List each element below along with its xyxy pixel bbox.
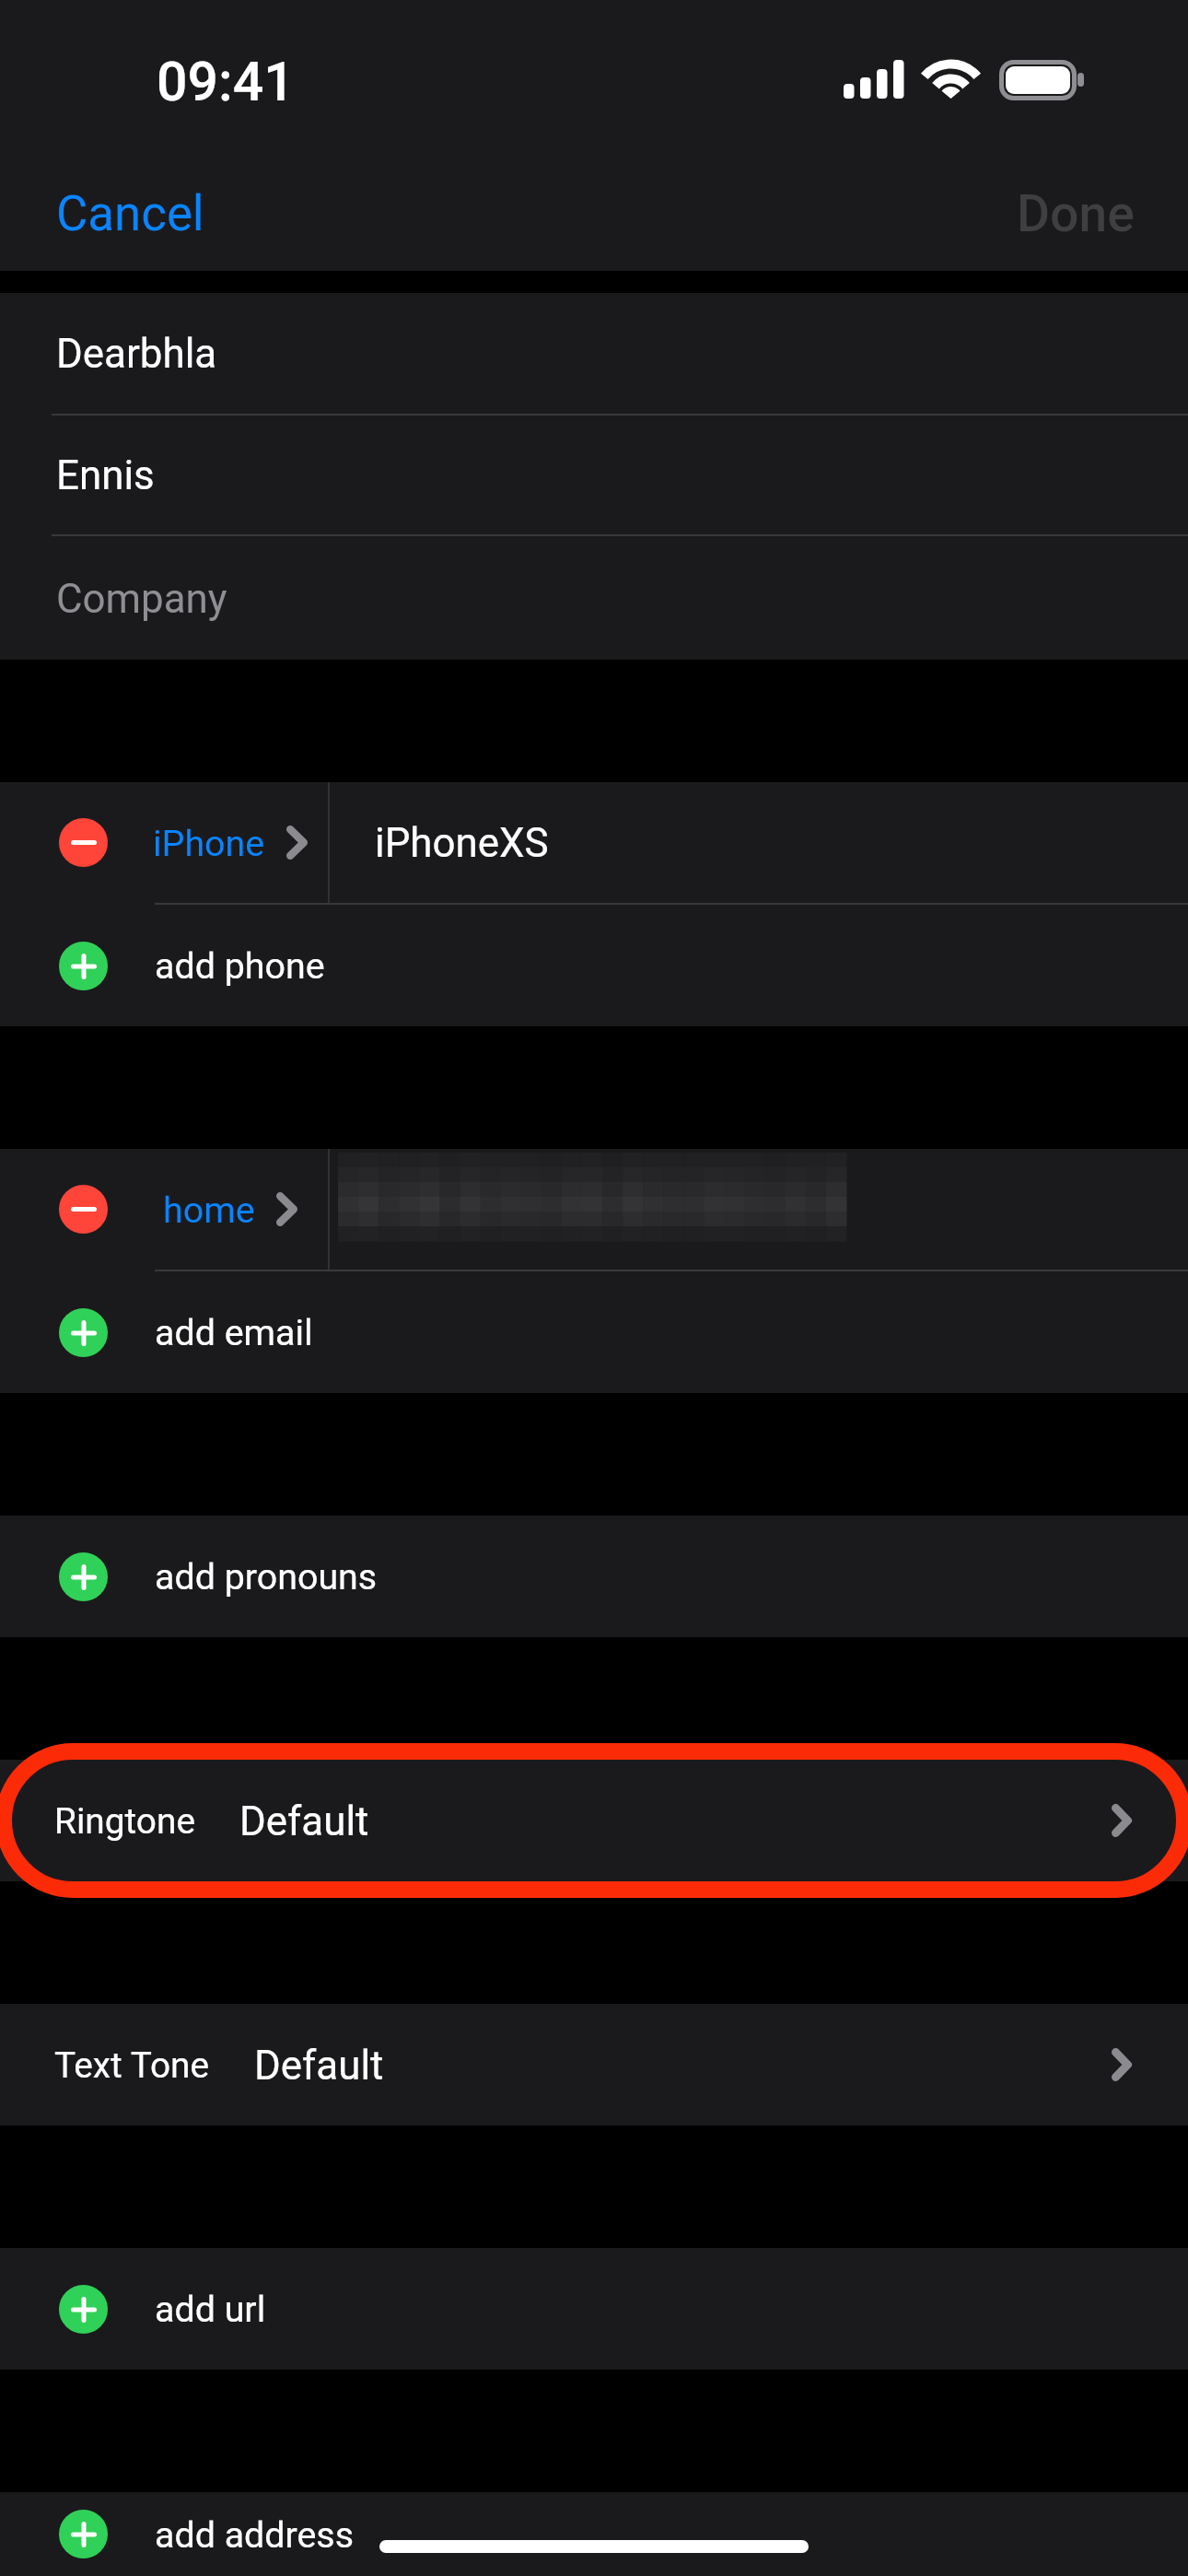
- button[interactable]: Cancel: [0, 158, 241, 270]
- staticText: Dearbhla: [56, 330, 217, 377]
- staticText: add email: [155, 1311, 313, 1353]
- button[interactable]: Add: [59, 2285, 108, 2334]
- button[interactable]: Ringtone: [0, 1760, 1188, 1881]
- staticText: add url: [155, 2288, 266, 2330]
- staticText: Company: [56, 575, 227, 622]
- button[interactable]: Done: [980, 157, 1188, 271]
- staticText: home: [163, 1188, 255, 1231]
- button[interactable]: Remove: [59, 1185, 108, 1234]
- staticText: Default: [254, 2042, 384, 2089]
- button[interactable]: Add: [0, 2248, 1188, 2370]
- staticText: Done: [1017, 184, 1135, 243]
- staticText: Ringtone: [54, 1800, 195, 1842]
- staticText: add address: [155, 2513, 355, 2556]
- button[interactable]: Text Tone: [0, 2004, 1188, 2125]
- button[interactable]: Remove: [59, 818, 108, 867]
- button[interactable]: home: [141, 1149, 320, 1270]
- button[interactable]: iPhone: [141, 782, 320, 903]
- button[interactable]: Dearbhla: [0, 293, 1188, 416]
- staticText: Default: [239, 1797, 369, 1844]
- button[interactable]: Remove: [0, 1149, 1188, 1270]
- button[interactable]: Ennis: [0, 416, 1188, 536]
- staticText: 09:41: [157, 50, 295, 113]
- button[interactable]: Company: [0, 536, 1188, 660]
- button[interactable]: Add: [0, 905, 1188, 1026]
- button[interactable]: Add: [0, 1271, 1188, 1393]
- button[interactable]: Remove: [0, 782, 1188, 903]
- button[interactable]: Add: [0, 2492, 1188, 2576]
- staticText: Cancel: [56, 185, 204, 242]
- button[interactable]: Add: [59, 2510, 108, 2558]
- button[interactable]: Add: [0, 1516, 1188, 1637]
- staticText: Ennis: [56, 451, 155, 498]
- staticText: iPhone: [153, 822, 265, 864]
- button[interactable]: Add: [59, 1552, 108, 1601]
- staticText: add phone: [155, 944, 325, 987]
- button[interactable]: Add: [59, 942, 108, 990]
- button[interactable]: Add: [59, 1308, 108, 1357]
- staticText: add pronouns: [155, 1555, 378, 1598]
- staticText: iPhoneXS: [375, 819, 549, 866]
- staticText: Text Tone: [54, 2044, 210, 2086]
